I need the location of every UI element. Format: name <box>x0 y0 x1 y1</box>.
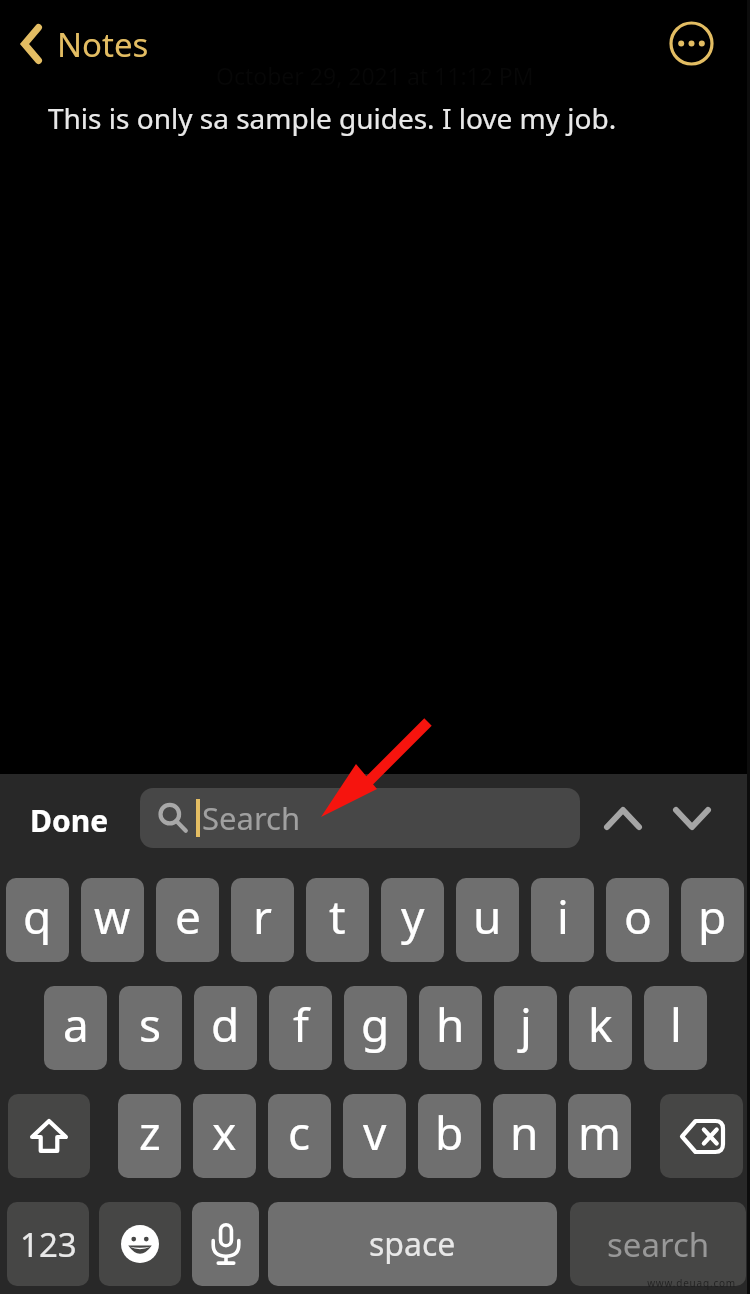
button[interactable]: 123 <box>7 1202 89 1286</box>
button[interactable]: g <box>344 986 407 1070</box>
staticText: i <box>557 885 569 948</box>
staticText: j <box>520 993 532 1056</box>
button[interactable]: u <box>456 878 519 962</box>
staticText: u <box>473 885 502 948</box>
button[interactable]: Dictate <box>192 1202 259 1286</box>
staticText: d <box>211 993 240 1056</box>
button[interactable]: y <box>381 878 444 962</box>
staticText: Notes <box>57 22 149 67</box>
staticText: www.deuaq.com <box>600 1276 736 1290</box>
button[interactable]: space <box>268 1202 557 1286</box>
staticText: 123 <box>20 1222 77 1267</box>
button[interactable]: k <box>569 986 632 1070</box>
button[interactable]: o <box>606 878 669 962</box>
staticText: This is only sa sample guides. I love my… <box>48 99 617 137</box>
staticText: m <box>578 1101 622 1164</box>
button[interactable]: w <box>81 878 144 962</box>
button[interactable]: Previous result <box>595 788 651 848</box>
staticText: w <box>94 885 131 948</box>
button[interactable]: x <box>193 1094 256 1178</box>
staticText: e <box>175 885 201 948</box>
button[interactable]: d <box>194 986 257 1070</box>
staticText: g <box>361 993 390 1056</box>
button[interactable]: More options <box>669 21 714 66</box>
button[interactable]: Delete <box>660 1094 743 1178</box>
button[interactable]: n <box>493 1094 556 1178</box>
staticText: f <box>293 993 309 1056</box>
staticText: x <box>212 1101 237 1164</box>
staticText: n <box>510 1101 539 1164</box>
staticText: v <box>363 1101 387 1164</box>
button[interactable]: b <box>418 1094 481 1178</box>
button[interactable]: Next result <box>664 788 720 848</box>
staticText: p <box>698 885 727 948</box>
button[interactable]: Notes <box>13 14 161 74</box>
button[interactable]: Done <box>24 794 115 847</box>
button[interactable]: q <box>6 878 69 962</box>
button[interactable]: l <box>644 986 707 1070</box>
button[interactable]: t <box>306 878 369 962</box>
button[interactable]: m <box>568 1094 631 1178</box>
staticText: Search <box>202 797 301 839</box>
button[interactable]: a <box>44 986 107 1070</box>
staticText: o <box>624 885 652 948</box>
staticText: Done <box>30 800 109 841</box>
staticText: t <box>329 885 346 948</box>
button[interactable]: e <box>156 878 219 962</box>
staticText: q <box>23 885 52 948</box>
staticText: s <box>139 993 162 1056</box>
staticText: y <box>401 885 425 948</box>
staticText: b <box>435 1101 464 1164</box>
button[interactable]: r <box>231 878 294 962</box>
button[interactable]: h <box>419 986 482 1070</box>
button[interactable]: s <box>119 986 182 1070</box>
button[interactable]: i <box>531 878 594 962</box>
staticText: c <box>288 1101 311 1164</box>
button[interactable]: c <box>268 1094 331 1178</box>
button[interactable]: Shift <box>8 1094 90 1178</box>
staticText: space <box>369 1222 456 1266</box>
staticText: z <box>139 1101 161 1164</box>
button[interactable]: search <box>570 1202 746 1286</box>
button[interactable]: Search <box>140 788 580 848</box>
button[interactable]: p <box>681 878 744 962</box>
staticText: l <box>670 993 682 1056</box>
staticText: a <box>63 993 89 1056</box>
staticText: search <box>607 1222 710 1267</box>
staticText: h <box>436 993 465 1056</box>
button[interactable]: f <box>269 986 332 1070</box>
staticText: r <box>253 885 272 948</box>
button[interactable]: z <box>118 1094 181 1178</box>
staticText: k <box>588 993 613 1056</box>
button[interactable]: Emoji <box>99 1202 181 1286</box>
button[interactable]: v <box>343 1094 406 1178</box>
button[interactable]: j <box>494 986 557 1070</box>
